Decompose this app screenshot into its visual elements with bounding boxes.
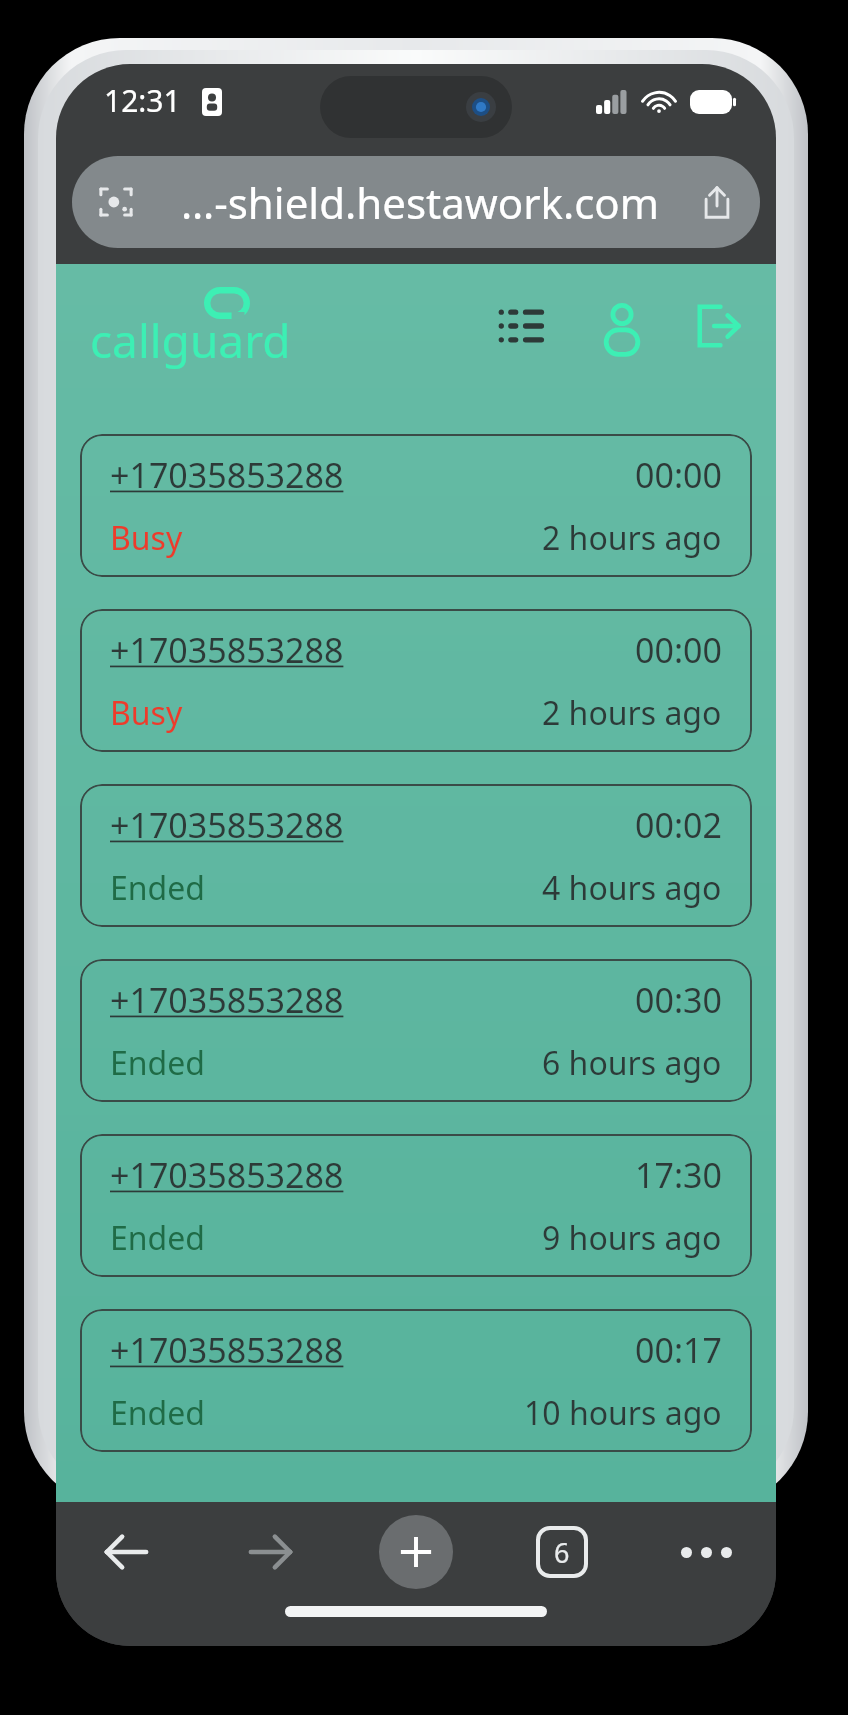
button[interactable]: +17035853288	[80, 959, 752, 1102]
button[interactable]: Account	[590, 294, 654, 358]
staticText: 6 hours ago	[542, 1041, 722, 1085]
button[interactable]: +17035853288	[80, 784, 752, 927]
staticText: Ended	[110, 1391, 205, 1435]
staticText: 00:17	[635, 1327, 722, 1373]
button[interactable]: New tab	[379, 1515, 453, 1589]
staticText: …-shield.hestawork.com	[148, 174, 692, 231]
other: Search with camera	[98, 184, 134, 220]
staticText: +17035853288	[110, 977, 344, 1023]
other: Share	[700, 185, 734, 219]
button[interactable]: callguard	[84, 291, 297, 362]
button[interactable]: +17035853288	[80, 609, 752, 752]
staticText: +17035853288	[110, 1327, 344, 1373]
staticText: Ended	[110, 1216, 205, 1260]
button[interactable]: Call list	[490, 294, 554, 358]
button[interactable]: +17035853288	[80, 1134, 752, 1277]
staticText: 00:00	[635, 627, 722, 673]
staticText: 00:30	[635, 977, 722, 1023]
staticText: 2 hours ago	[542, 691, 722, 735]
staticText: Busy	[110, 516, 183, 560]
staticText: 2 hours ago	[542, 516, 722, 560]
staticText: +17035853288	[110, 452, 344, 498]
staticText: +17035853288	[110, 802, 344, 848]
staticText: +17035853288	[110, 1152, 344, 1198]
button[interactable]: Search with camera	[72, 156, 760, 248]
staticText: Ended	[110, 1041, 205, 1085]
staticText: 00:02	[635, 802, 722, 848]
staticText: 10 hours ago	[524, 1391, 722, 1435]
button[interactable]: Back	[90, 1516, 162, 1588]
button[interactable]: Tabs	[526, 1516, 598, 1588]
staticText: 17:30	[635, 1152, 722, 1198]
staticText: Busy	[110, 691, 183, 735]
button[interactable]: +17035853288	[80, 1309, 752, 1452]
button[interactable]: Forward	[235, 1516, 307, 1588]
staticText: +17035853288	[110, 627, 344, 673]
staticText: Ended	[110, 866, 205, 910]
staticText: 12:31	[104, 80, 181, 121]
button[interactable]: +17035853288	[80, 434, 752, 577]
staticText: 9 hours ago	[542, 1216, 722, 1260]
button[interactable]: More	[670, 1516, 742, 1588]
button[interactable]: Log out	[686, 294, 750, 358]
staticText: 4 hours ago	[542, 866, 722, 910]
staticText: 00:00	[635, 452, 722, 498]
staticText: 6	[554, 1534, 570, 1571]
staticText: callguard	[90, 309, 291, 372]
